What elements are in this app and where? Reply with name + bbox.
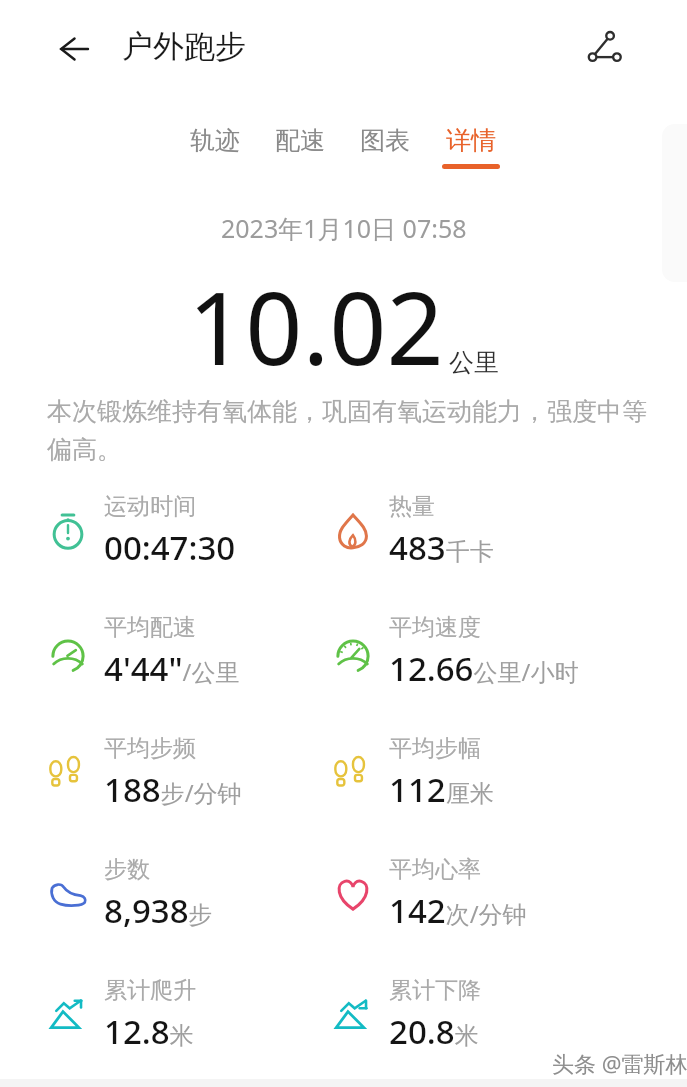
staticText: 轨迹 (190, 125, 240, 156)
staticText: 平均步幅 (389, 734, 481, 763)
staticText: 配速 (275, 125, 325, 156)
staticText: 平均心率 (389, 855, 481, 884)
staticText: 步数 (104, 855, 150, 884)
staticText: 本次锻炼维持有氧体能，巩固有氧运动能力，强度中等偏高。 (47, 396, 647, 466)
staticText: 公里 (449, 347, 499, 378)
button[interactable]: 运动时间 (40, 483, 340, 579)
button[interactable]: 累计下降 (325, 967, 625, 1063)
staticText: 10.02 (188, 258, 444, 394)
staticText: 8,938步 (104, 888, 213, 933)
staticText: 12.66公里/小时 (389, 646, 579, 691)
button[interactable]: 详情 (430, 125, 512, 181)
button[interactable]: 热量 (325, 483, 625, 579)
staticText: 累计爬升 (104, 976, 196, 1005)
staticText: 户外跑步 (122, 27, 246, 66)
staticText: 142次/分钟 (389, 888, 527, 933)
staticText: 热量 (389, 492, 435, 521)
staticText: 00:47:30 (104, 525, 236, 570)
staticText: 2023年1月10日 07:58 (221, 211, 467, 245)
staticText: 平均步频 (104, 734, 196, 763)
button[interactable]: 步数 (40, 846, 340, 942)
staticText: 累计下降 (389, 976, 481, 1005)
button[interactable]: 配速 (259, 125, 341, 181)
staticText: 头条 @雷斯林 (552, 1048, 687, 1078)
button[interactable]: 平均步幅 (325, 725, 625, 821)
staticText: 平均速度 (389, 613, 481, 642)
button[interactable]: 平均配速 (40, 604, 340, 700)
staticText: 20.8米 (389, 1009, 479, 1054)
button[interactable]: 平均速度 (325, 604, 625, 700)
button[interactable]: 图表 (344, 125, 426, 181)
staticText: 483千卡 (389, 525, 494, 570)
button[interactable]: 轨迹 (174, 125, 256, 181)
button[interactable]: 平均步频 (40, 725, 340, 821)
button[interactable]: 累计爬升 (40, 967, 340, 1063)
staticText: 运动时间 (104, 492, 196, 521)
button[interactable]: Back (46, 23, 98, 75)
staticText: 4'44"/公里 (104, 646, 240, 691)
staticText: 188步/分钟 (104, 767, 242, 812)
staticText: 平均配速 (104, 613, 196, 642)
staticText: 详情 (446, 125, 496, 156)
staticText: 112厘米 (389, 767, 494, 812)
staticText: 图表 (360, 125, 410, 156)
staticText: 12.8米 (104, 1009, 194, 1054)
button[interactable]: 平均心率 (325, 846, 625, 942)
button[interactable]: Share (576, 20, 632, 76)
